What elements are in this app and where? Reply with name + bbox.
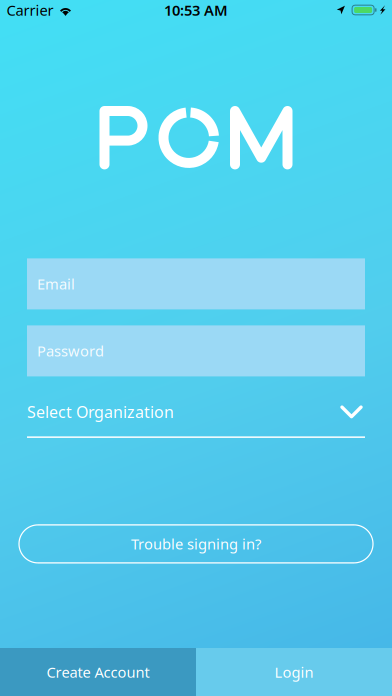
staticText: Carrier xyxy=(6,0,53,20)
staticText: Password xyxy=(37,341,104,361)
staticText: Email xyxy=(37,274,75,294)
staticText: Trouble signing in? xyxy=(131,534,261,554)
button[interactable]: Trouble signing in? xyxy=(0,525,392,563)
staticText: Login xyxy=(274,662,313,682)
staticText: Create Account xyxy=(46,662,149,682)
staticText: 10:53 AM xyxy=(164,0,228,20)
staticText: Select Organization xyxy=(27,401,174,422)
button[interactable]: Select Organization xyxy=(0,376,392,438)
button[interactable]: Create Account xyxy=(0,648,196,696)
button[interactable]: Login xyxy=(196,648,392,696)
